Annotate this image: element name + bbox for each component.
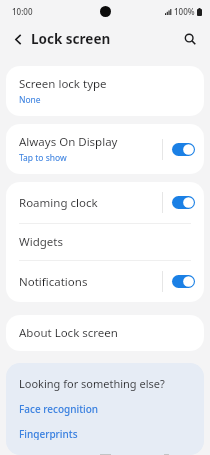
button[interactable]: Toggle on (172, 196, 195, 209)
staticText: 10:00 (12, 6, 33, 17)
button[interactable]: Toggle on (172, 143, 195, 156)
staticText: Widgets (19, 234, 63, 250)
button[interactable]: Fingerprints (19, 427, 78, 440)
staticText: Always On Display (19, 134, 118, 150)
button[interactable]: Screen lock type (6, 66, 204, 116)
staticText: About Lock screen (19, 325, 118, 341)
button[interactable]: Roaming clock (6, 182, 204, 223)
staticText: Screen lock type (19, 76, 107, 92)
staticText: Lock screen (31, 30, 111, 48)
button[interactable]: Back (6, 27, 30, 51)
staticText: Looking for something else? (19, 376, 165, 391)
button[interactable]: Search (178, 27, 202, 51)
button[interactable]: Notifications (6, 261, 204, 302)
staticText: Notifications (19, 274, 88, 290)
staticText: Fingerprints (19, 427, 78, 440)
button[interactable]: Toggle on (172, 275, 195, 288)
button[interactable]: Face recognition (19, 402, 99, 416)
button[interactable]: Always On Display (6, 124, 204, 174)
staticText: Tap to show (19, 152, 67, 164)
staticText: Face recognition (19, 402, 99, 416)
staticText: Roaming clock (19, 195, 98, 211)
button[interactable]: About Lock screen (6, 315, 204, 351)
staticText: 100% (174, 6, 195, 17)
staticText: None (19, 94, 41, 106)
button[interactable]: Widgets (6, 224, 204, 260)
